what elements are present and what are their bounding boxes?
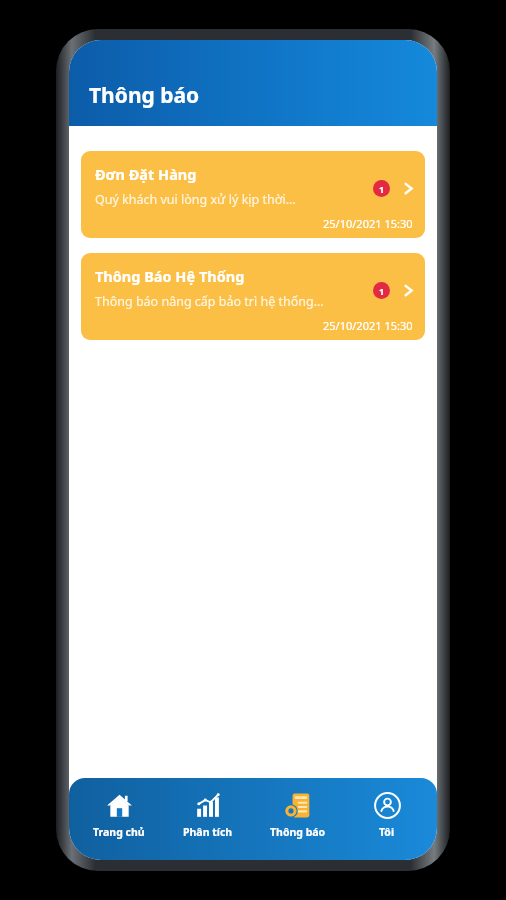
staticText: 25/10/2021 15:30 <box>323 216 413 231</box>
staticText: 1 <box>379 285 385 297</box>
staticText: 1 <box>379 183 385 195</box>
button[interactable]: Thông Báo Hệ Thống <box>81 253 425 340</box>
button[interactable]: Tôi <box>347 788 427 843</box>
button[interactable]: Đơn Đặt Hàng <box>81 151 425 238</box>
staticText: 25/10/2021 15:30 <box>323 318 413 333</box>
staticText: Tôi <box>379 825 395 839</box>
button[interactable]: Thông báo <box>258 788 338 843</box>
staticText: Trang chủ <box>93 825 145 839</box>
staticText: Thông Báo Hệ Thống <box>95 266 245 286</box>
staticText: Thông báo nâng cấp bảo trì hệ thống... <box>95 293 324 310</box>
button[interactable]: Phân tích <box>168 788 248 843</box>
staticText: Phân tích <box>183 825 233 839</box>
staticText: Thông báo <box>89 81 200 110</box>
staticText: Đơn Đặt Hàng <box>95 164 197 184</box>
staticText: Thông báo <box>270 825 326 839</box>
staticText: Quý khách vui lòng xử lý kịp thời... <box>95 191 296 208</box>
button[interactable]: Trang chủ <box>79 788 159 843</box>
